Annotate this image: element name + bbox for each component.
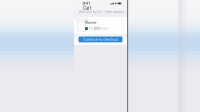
staticText: Cart — [83, 6, 91, 11]
staticText: Runner — [85, 21, 96, 25]
staticText: Continue to checkout — [83, 37, 118, 41]
staticText: 1 × $89 — [89, 27, 100, 30]
staticText: Your bag — [74, 18, 88, 21]
button[interactable]: Continue to checkout — [78, 36, 122, 42]
staticText: Delivery by Fri · Free returns — [79, 10, 124, 14]
staticText: 9:41 — [82, 1, 90, 6]
